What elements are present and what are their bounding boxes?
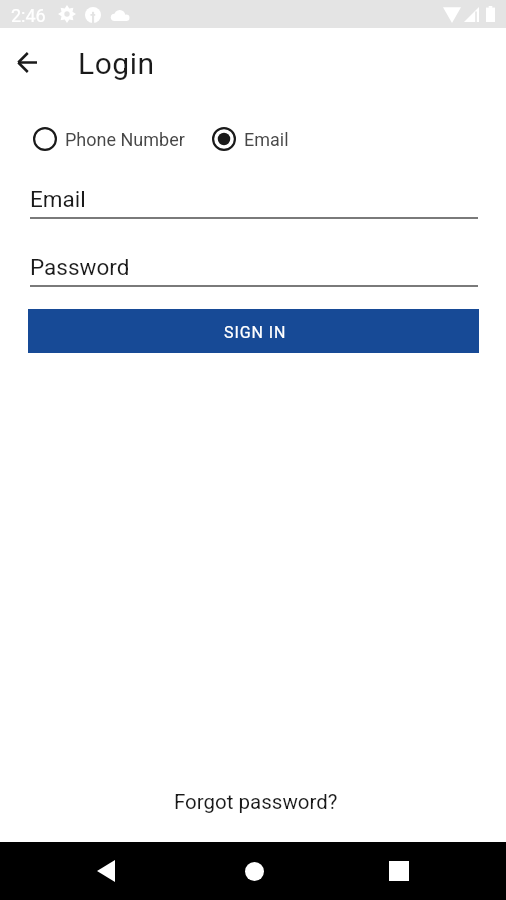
staticText: Password: [30, 254, 130, 280]
button[interactable]: Back: [11, 46, 43, 78]
button[interactable]: Home: [228, 842, 280, 900]
staticText: Phone Number: [65, 129, 185, 150]
staticText: 2:46: [11, 5, 46, 26]
staticText: SIGN IN: [224, 323, 287, 342]
button[interactable]: Forgot password?: [162, 781, 350, 823]
staticText: Email: [30, 186, 86, 212]
button[interactable]: Phone Number: [33, 127, 185, 151]
staticText: Forgot password?: [174, 790, 338, 814]
button[interactable]: Email: [212, 127, 289, 151]
button[interactable]: SIGN IN: [28, 309, 479, 353]
button[interactable]: Email: [30, 178, 478, 219]
button[interactable]: Password: [30, 246, 478, 287]
staticText: Login: [78, 46, 155, 81]
button[interactable]: Recents: [373, 842, 425, 900]
staticText: Email: [244, 129, 289, 150]
button[interactable]: Back: [80, 842, 132, 900]
